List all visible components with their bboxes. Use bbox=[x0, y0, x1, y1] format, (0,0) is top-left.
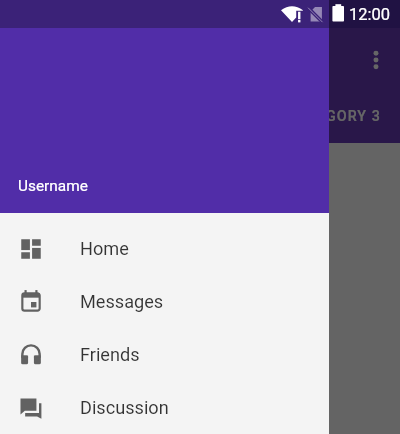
staticText: Username bbox=[18, 177, 88, 195]
button[interactable]: Discussion bbox=[0, 381, 329, 434]
button[interactable]: Friends bbox=[0, 328, 329, 381]
staticText: 12:00 bbox=[349, 5, 391, 24]
staticText: Friends bbox=[80, 344, 140, 365]
button[interactable]: Messages bbox=[0, 275, 329, 328]
button[interactable]: CATEGORY 3 bbox=[267, 90, 400, 143]
staticText: Discussion bbox=[80, 397, 169, 418]
button[interactable]: Home bbox=[0, 222, 329, 275]
button[interactable]: More options bbox=[349, 33, 400, 86]
button[interactable] bbox=[0, 0, 400, 434]
staticText: Home bbox=[80, 238, 129, 259]
staticText: Messages bbox=[80, 291, 164, 312]
staticText: CATEGORY 3 bbox=[287, 108, 381, 125]
